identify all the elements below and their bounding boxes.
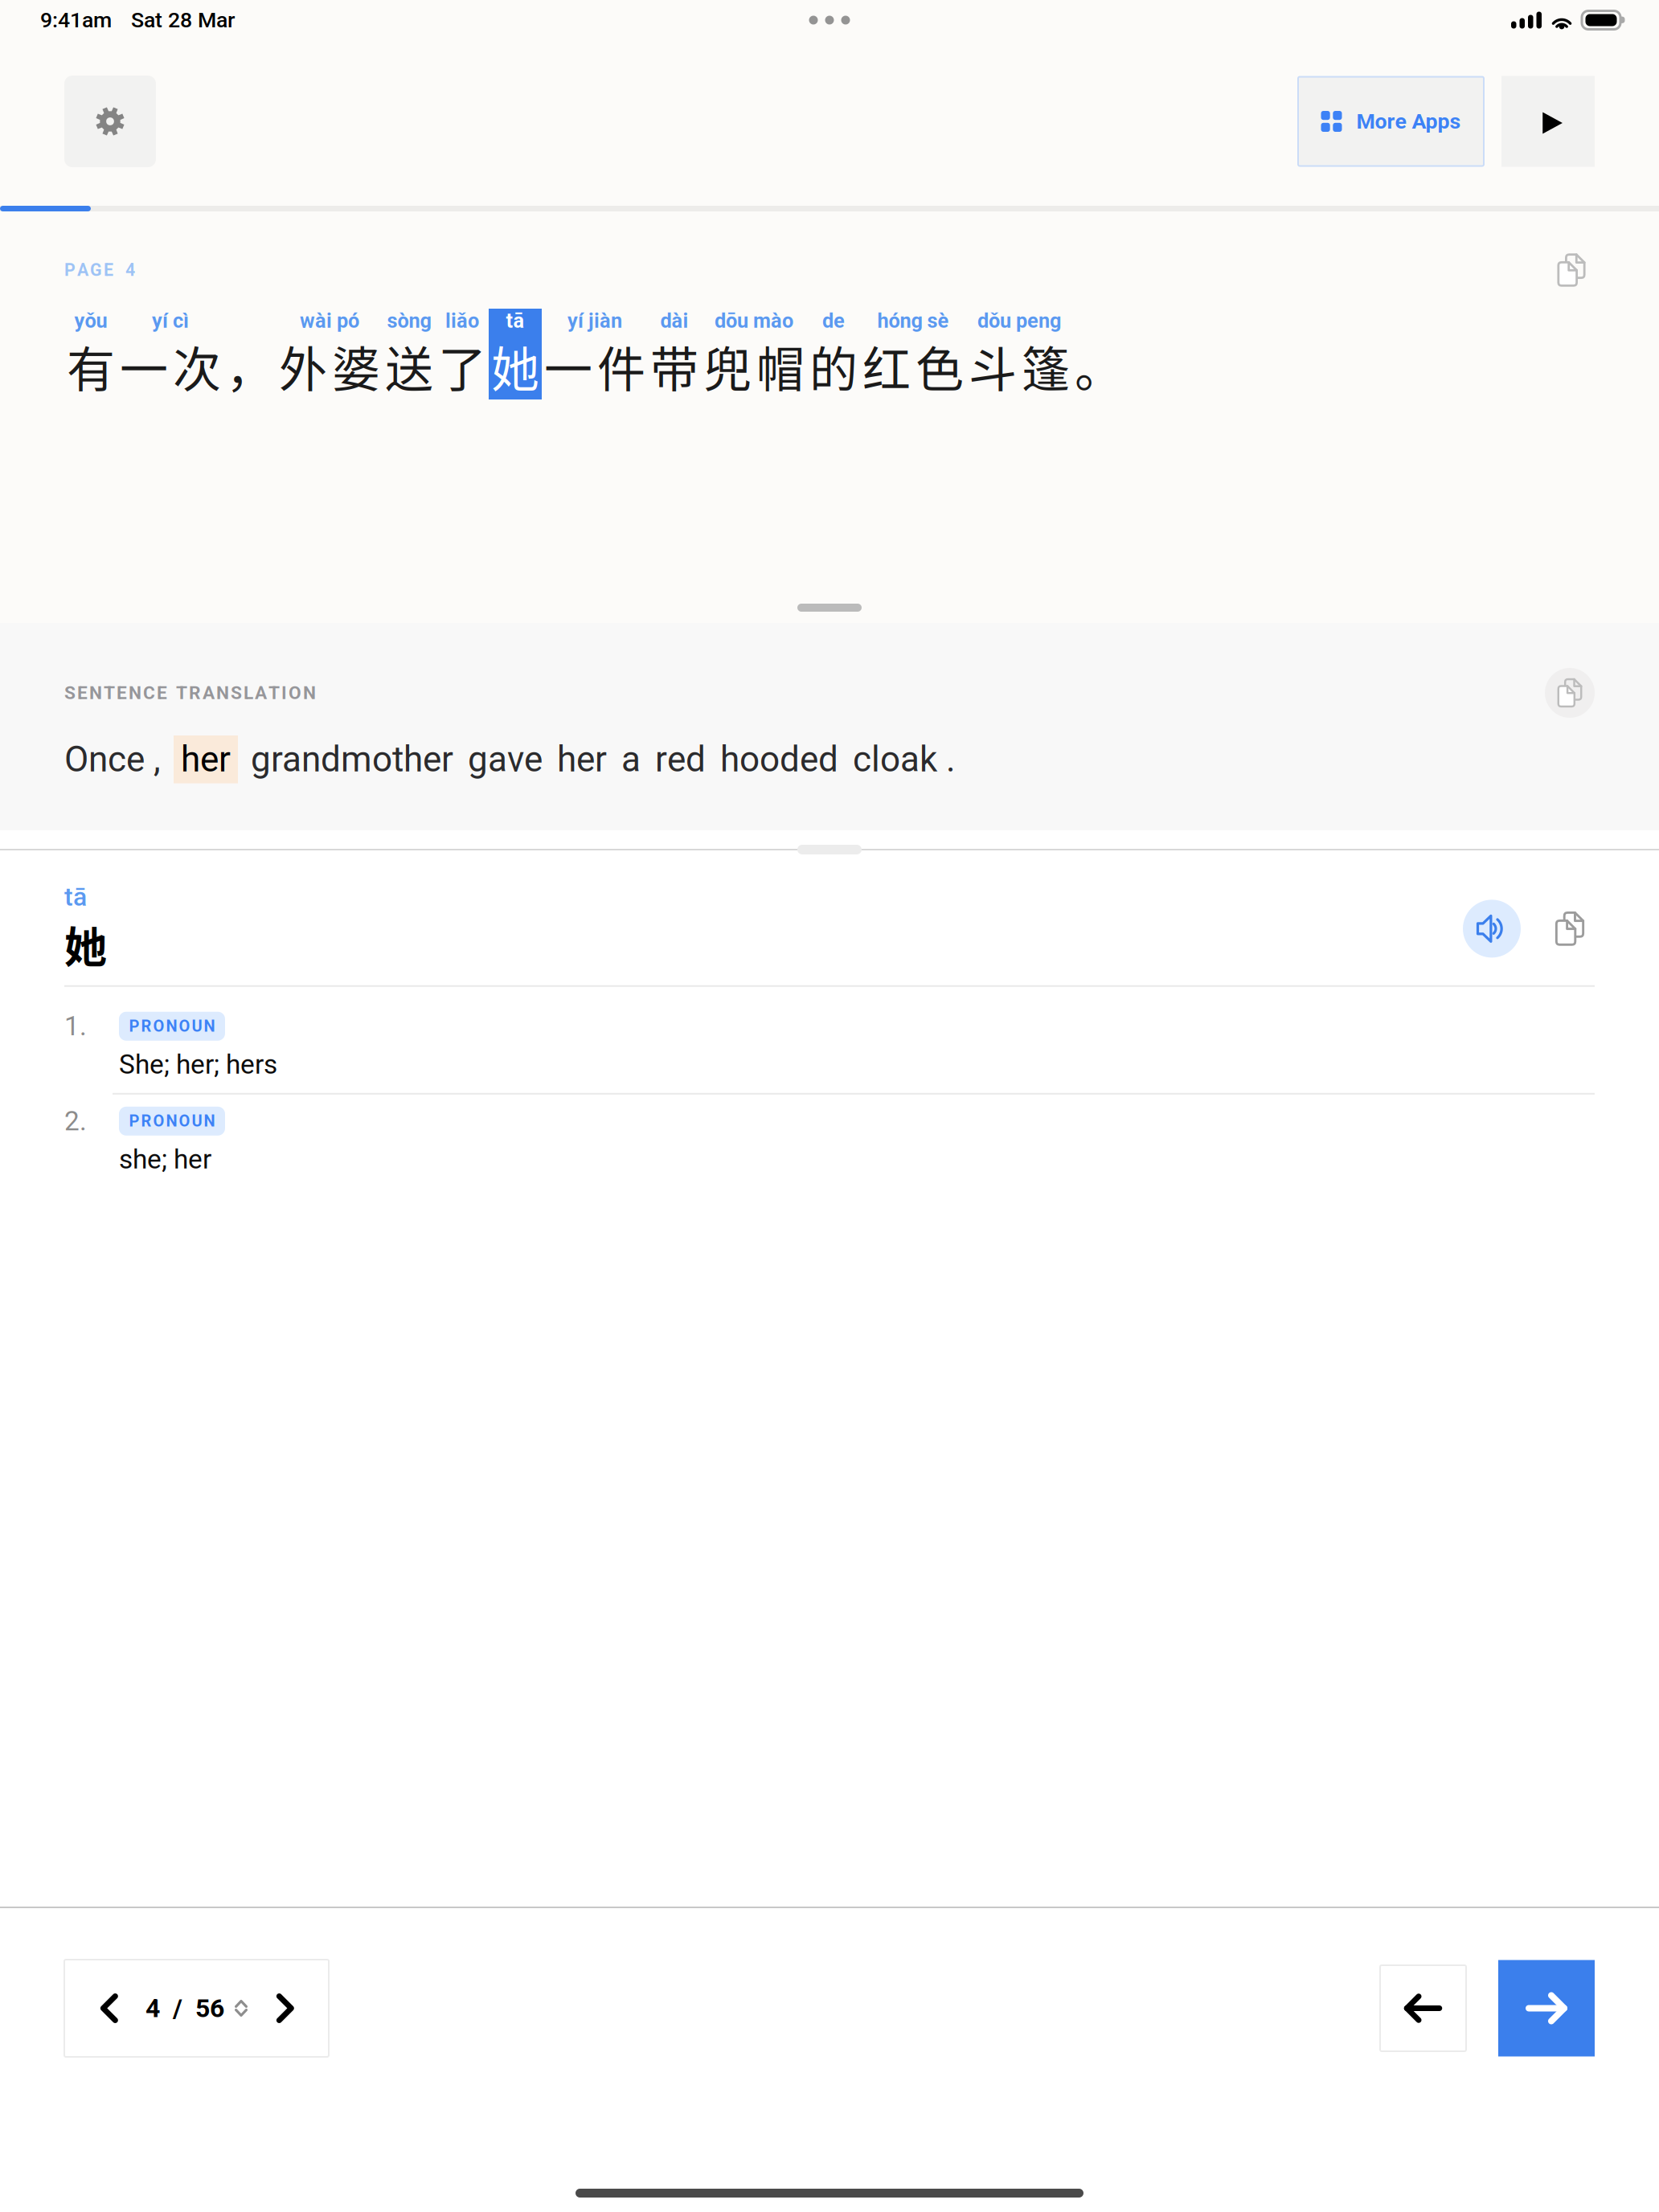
staticText: 了 xyxy=(438,331,486,401)
staticText: liǎo xyxy=(445,309,479,333)
staticText: dǒu peng xyxy=(977,309,1061,333)
staticText: her xyxy=(181,739,231,780)
staticText: wài pó xyxy=(300,309,359,333)
button[interactable]: Play pronunciation xyxy=(1463,900,1521,958)
staticText: ， xyxy=(226,331,274,401)
staticText: gave xyxy=(468,739,543,780)
button[interactable]: Play audio xyxy=(1501,76,1595,167)
staticText: 篷 xyxy=(1022,331,1070,401)
staticText: 兜 xyxy=(703,331,752,401)
staticText: 帽 xyxy=(756,331,805,401)
staticText: 次 xyxy=(173,331,221,401)
staticText: de xyxy=(822,309,845,333)
staticText: red xyxy=(655,739,706,780)
staticText: 送 xyxy=(385,331,433,401)
staticText: 婆 xyxy=(332,331,380,401)
staticText: S E N T E N C E T R A N S L A T I O N xyxy=(64,682,316,704)
button[interactable]: Copy word xyxy=(1545,904,1595,954)
staticText: P R O N O U N xyxy=(129,1017,215,1036)
staticText: P A G E 4 xyxy=(64,260,135,280)
button[interactable]: Next page xyxy=(262,1980,307,2036)
staticText: her xyxy=(557,739,607,780)
staticText: sòng xyxy=(387,309,431,333)
staticText: tā xyxy=(506,309,524,333)
staticText: hóng sè xyxy=(877,309,949,333)
staticText: 有 xyxy=(67,331,115,401)
staticText: 9:41am xyxy=(40,8,112,33)
staticText: tā xyxy=(64,882,87,912)
staticText: 2. xyxy=(64,1105,87,1137)
staticText: 的 xyxy=(809,331,858,401)
staticText: Sat 28 Mar xyxy=(131,8,235,33)
staticText: Once , xyxy=(64,739,161,780)
staticText: she; her xyxy=(119,1144,211,1175)
staticText: 1. xyxy=(64,1011,87,1042)
button[interactable]: Next sentence xyxy=(1498,1960,1595,2056)
staticText: 一 xyxy=(544,331,592,401)
button[interactable]: Settings xyxy=(64,76,156,167)
staticText: 带 xyxy=(650,331,698,401)
staticText: 4 / 56 xyxy=(145,1993,224,2023)
staticText: 外 xyxy=(279,331,327,401)
staticText: grandmother xyxy=(251,739,453,780)
staticText: 她 xyxy=(64,913,107,976)
staticText: dōu mào xyxy=(715,309,793,333)
staticText: P R O N O U N xyxy=(129,1112,215,1131)
staticText: 一 xyxy=(120,331,168,401)
staticText: dài xyxy=(660,309,688,333)
staticText: More Apps xyxy=(1356,109,1461,134)
button[interactable]: More Apps xyxy=(1298,77,1484,166)
button[interactable]: Select page xyxy=(145,1980,248,2036)
staticText: 。 xyxy=(1075,331,1123,401)
button[interactable]: Previous sentence xyxy=(1380,1965,1466,2051)
staticText: a xyxy=(621,739,641,780)
button[interactable]: Previous page xyxy=(86,1980,131,2036)
staticText: 件 xyxy=(597,331,645,401)
button[interactable]: Copy sentence xyxy=(1548,247,1595,293)
staticText: 红 xyxy=(862,331,911,401)
staticText: yí jiàn xyxy=(567,309,622,333)
staticText: 斗 xyxy=(969,331,1017,401)
staticText: yí cì xyxy=(152,309,189,333)
staticText: yǒu xyxy=(74,309,107,333)
staticText: cloak . xyxy=(853,739,956,780)
staticText: 色 xyxy=(916,331,964,401)
button[interactable]: Copy translation xyxy=(1545,668,1595,718)
staticText: She; her; hers xyxy=(119,1049,277,1080)
staticText: hooded xyxy=(720,739,838,780)
staticText: 她 xyxy=(491,331,539,401)
